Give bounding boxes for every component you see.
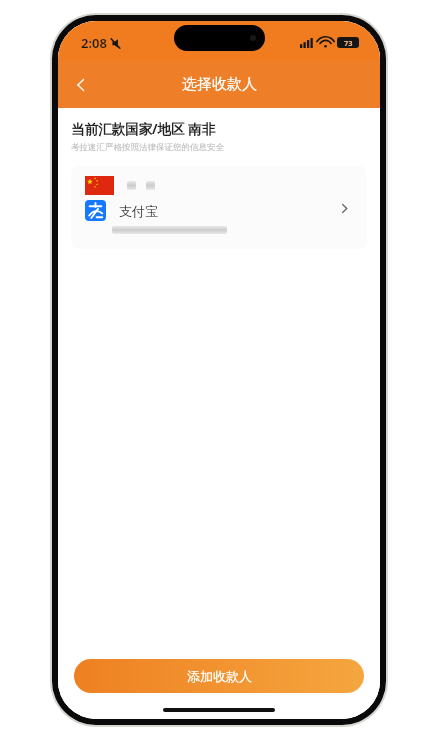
button[interactable]: 支付宝 [71, 166, 367, 249]
staticText: 添加收款人 [187, 668, 252, 684]
staticText: 当前汇款国家/地区 南非 [71, 120, 216, 138]
staticText: 支付宝 [119, 203, 158, 219]
staticText: 考拉速汇严格按照法律保证您的信息安全 [71, 142, 224, 153]
staticText: 2:08 [81, 34, 107, 52]
button[interactable]: Back [61, 65, 101, 105]
button[interactable]: 添加收款人 [74, 659, 364, 693]
staticText: 73 [344, 38, 353, 48]
staticText: 选择收款人 [182, 75, 257, 94]
